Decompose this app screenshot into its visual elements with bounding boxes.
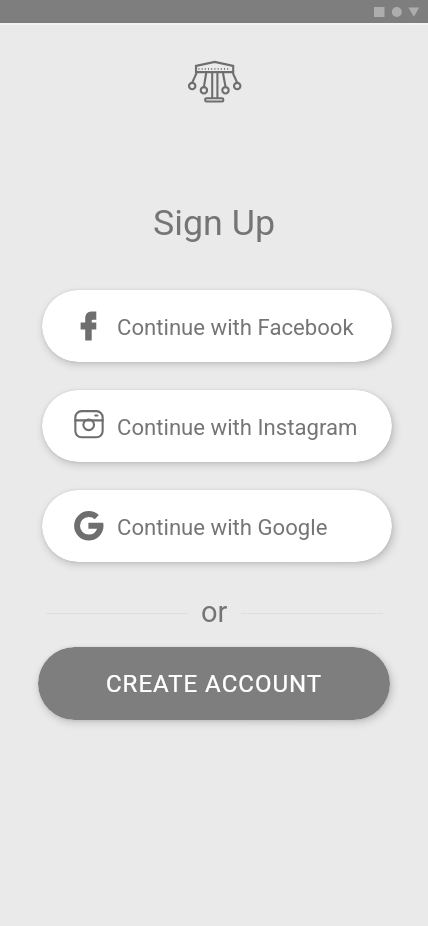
staticText: CREATE ACCOUNT	[106, 670, 323, 698]
button[interactable]: Continue with Instagram	[42, 390, 392, 462]
staticText: Continue with Instagram	[117, 414, 358, 440]
button[interactable]: Continue with Google	[42, 490, 392, 562]
staticText: Sign Up	[153, 202, 276, 244]
button[interactable]: Continue with Facebook	[42, 290, 392, 362]
button[interactable]: CREATE ACCOUNT	[38, 647, 390, 720]
staticText: Continue with Facebook	[117, 314, 354, 340]
staticText: Continue with Google	[117, 514, 328, 540]
staticText: or	[201, 595, 228, 629]
